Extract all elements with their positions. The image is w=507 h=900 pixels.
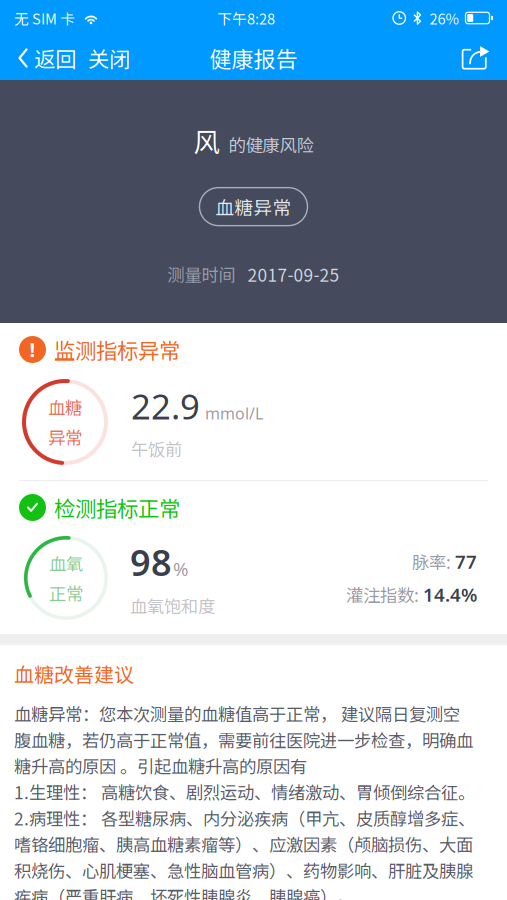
staticText: 测量时间 <box>167 262 235 287</box>
staticText: 血氧 <box>49 550 83 575</box>
staticText: 26% <box>429 7 459 29</box>
staticText: 午饭前 <box>131 436 182 461</box>
staticText: 疾病（严重肝病、坏死性胰腺炎、胰腺癌）。 <box>14 884 354 900</box>
staticText: 嗜铬细胞瘤、胰高血糖素瘤等）、应激因素（颅脑损伤、大面 <box>14 831 473 857</box>
staticText: 灌注指数: <box>346 582 423 607</box>
staticText: 血糖异常：您本次测量的血糖值高于正常， 建议隔日复测空 <box>14 701 460 726</box>
staticText: 积烧伤、心肌梗塞、急性脑血管病）、药物影响、肝脏及胰腺 <box>14 858 473 883</box>
staticText: ! <box>29 336 35 363</box>
staticText: 异常 <box>48 424 82 450</box>
staticText: 监测指标异常 <box>54 334 180 365</box>
button[interactable]: 关闭 <box>82 36 136 80</box>
staticText: 22.9 <box>131 383 200 429</box>
staticText: 正常 <box>49 580 83 606</box>
staticText: % <box>173 556 189 581</box>
staticText: 血糖改善建议 <box>14 659 134 688</box>
staticText: 1.生理性： 高糖饮食、剧烈运动、情绪激动、胃倾倒综合征。 <box>14 779 475 804</box>
staticText: 2017-09-25 <box>247 262 339 287</box>
staticText: 98 <box>130 538 172 586</box>
staticText: 腹血糖，若仍高于正常值，需要前往医院进一步检查，明确血 <box>14 727 473 752</box>
staticText: 血糖异常 <box>215 193 291 220</box>
staticText: 脉率: <box>412 549 455 574</box>
staticText: mmol/L <box>205 403 263 424</box>
staticText: 血糖 <box>48 394 82 419</box>
button[interactable]: 分享 <box>445 36 507 80</box>
staticText: 检测指标正常 <box>54 492 180 523</box>
staticText: 糖升高的原因 。引起血糖升高的原因有 <box>14 753 307 778</box>
staticText: 77 <box>455 549 477 574</box>
staticText: 的健康风险 <box>228 132 313 157</box>
staticText: 返回 <box>34 43 76 73</box>
staticText: 血氧饱和度 <box>130 593 215 618</box>
staticText: 健康报告 <box>209 42 297 74</box>
staticText: 下午8:28 <box>217 7 275 29</box>
staticText: 无 SIM 卡 <box>14 7 75 29</box>
staticText: 风 <box>193 121 220 160</box>
staticText: 关闭 <box>88 43 130 73</box>
staticText: 14.4% <box>423 582 477 607</box>
staticText: 2.病理性： 各型糖尿病、内分泌疾病（甲亢、皮质醇增多症、 <box>14 805 475 830</box>
button[interactable]: 返回 <box>0 36 82 80</box>
